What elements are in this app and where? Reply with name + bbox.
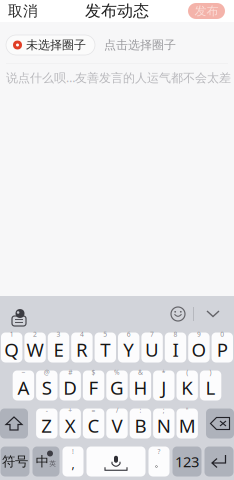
button[interactable]: 3: [48, 332, 69, 362]
staticText: E: [53, 337, 63, 362]
staticText: U: [145, 337, 159, 362]
staticText: L: [206, 375, 216, 400]
button[interactable]: 换行: [204, 446, 233, 476]
button[interactable]: 未选择圈子: [6, 35, 95, 55]
button[interactable]: ~: [13, 370, 34, 400]
staticText: W: [27, 337, 44, 362]
staticText: Z: [41, 413, 52, 438]
staticText: F: [89, 375, 99, 400]
button[interactable]: :: [130, 408, 151, 438]
staticText: (: [186, 368, 188, 377]
button[interactable]: -: [36, 408, 57, 438]
staticText: %: [114, 368, 120, 377]
staticText: 取消: [8, 2, 38, 20]
staticText: O: [191, 337, 206, 362]
button[interactable]: 8: [165, 332, 186, 362]
staticText: I: [172, 337, 178, 362]
staticText: 4: [80, 330, 84, 339]
button[interactable]: 数字键盘: [172, 446, 201, 476]
button[interactable]: +: [59, 408, 81, 438]
button[interactable]: 取消: [0, 0, 46, 22]
button[interactable]: 切换输入法: [2, 297, 36, 331]
button[interactable]: 4: [71, 332, 93, 362]
button[interactable]: 大写: [0, 408, 28, 438]
staticText: ~: [21, 368, 25, 377]
staticText: 2: [33, 330, 37, 339]
staticText: X: [65, 413, 76, 438]
staticText: #: [68, 368, 72, 377]
staticText: T: [100, 337, 110, 362]
button[interactable]: !: [62, 446, 83, 476]
staticText: 0: [220, 330, 224, 339]
staticText: ": [186, 406, 189, 415]
staticText: $: [92, 368, 96, 377]
staticText: B: [134, 413, 146, 438]
button[interactable]: #: [59, 370, 81, 400]
staticText: ?: [157, 447, 160, 456]
staticText: &: [138, 368, 143, 377]
button[interactable]: 表情: [163, 297, 193, 331]
button[interactable]: @: [36, 370, 57, 400]
button[interactable]: %: [106, 370, 128, 400]
staticText: 英: [49, 459, 56, 468]
button[interactable]: &: [130, 370, 151, 400]
button[interactable]: =: [83, 408, 104, 438]
staticText: C: [88, 413, 100, 438]
button[interactable]: (: [176, 370, 198, 400]
button[interactable]: ): [200, 370, 221, 400]
button[interactable]: 7: [141, 332, 163, 362]
button[interactable]: 5: [95, 332, 116, 362]
staticText: 未选择圈子: [26, 38, 86, 52]
staticText: 9: [197, 330, 201, 339]
button[interactable]: 6: [118, 332, 139, 362]
staticText: 点击选择圈子: [104, 38, 176, 52]
staticText: 符号: [2, 453, 28, 470]
button[interactable]: ": [176, 408, 198, 438]
button[interactable]: 点击选择圈子: [95, 35, 180, 55]
staticText: S: [42, 375, 52, 400]
staticText: 说点什么呗…友善发言的人运气都不会太差: [6, 70, 231, 85]
staticText: M: [179, 413, 196, 438]
staticText: N: [157, 413, 171, 438]
staticText: *: [162, 368, 166, 377]
staticText: =: [92, 406, 96, 415]
staticText: ): [210, 368, 212, 377]
staticText: G: [110, 375, 124, 400]
staticText: -: [46, 406, 48, 415]
staticText: 5: [103, 330, 107, 339]
button[interactable]: 1: [1, 332, 22, 362]
staticText: D: [63, 375, 77, 400]
staticText: J: [161, 375, 166, 400]
staticText: V: [111, 413, 122, 438]
button[interactable]: 0: [212, 332, 233, 362]
button[interactable]: 空格: [86, 446, 145, 476]
button[interactable]: 9: [188, 332, 210, 362]
staticText: /: [116, 406, 118, 415]
staticText: 8: [173, 330, 177, 339]
button[interactable]: 符号: [0, 446, 29, 476]
staticText: 123: [175, 452, 199, 471]
staticText: !: [72, 447, 74, 456]
button[interactable]: ?: [148, 446, 169, 476]
button[interactable]: /: [106, 408, 128, 438]
button[interactable]: 删除: [206, 408, 234, 438]
staticText: P: [217, 337, 228, 362]
button[interactable]: 发布: [188, 0, 234, 22]
button[interactable]: 2: [24, 332, 46, 362]
staticText: +: [68, 406, 72, 415]
button[interactable]: 收起键盘: [194, 297, 232, 331]
button[interactable]: 中英切换: [32, 446, 59, 476]
staticText: :: [139, 406, 141, 415]
staticText: 3: [56, 330, 60, 339]
staticText: A: [17, 375, 29, 400]
staticText: ;: [163, 406, 165, 415]
staticText: Q: [4, 337, 19, 362]
staticText: ,: [71, 455, 74, 471]
button[interactable]: $: [83, 370, 104, 400]
staticText: 发布: [194, 4, 218, 18]
staticText: H: [133, 375, 147, 400]
staticText: K: [181, 375, 193, 400]
staticText: @: [44, 368, 50, 377]
button[interactable]: ;: [153, 408, 174, 438]
button[interactable]: *: [153, 370, 174, 400]
